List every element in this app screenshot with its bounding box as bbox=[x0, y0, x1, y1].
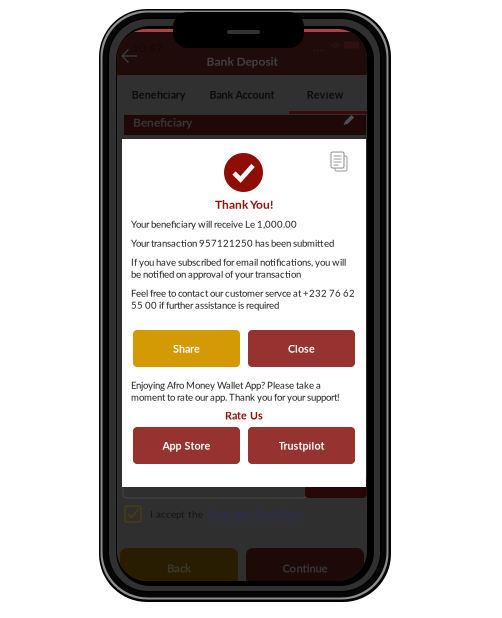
staticText: Rate Us bbox=[225, 409, 263, 422]
staticText: Review bbox=[307, 88, 344, 101]
button[interactable]: Trustpilot bbox=[248, 427, 355, 464]
button[interactable]: Close bbox=[248, 330, 355, 367]
staticText: 55 00 if further assistance is required bbox=[131, 299, 279, 311]
staticText: be notified on approval of your transact… bbox=[131, 268, 301, 280]
staticText: Your transaction 957121250 has been subm… bbox=[131, 237, 334, 249]
button[interactable]: Beneficiary bbox=[117, 75, 200, 114]
staticText: Back bbox=[167, 561, 191, 575]
staticText: Enjoying Afro Money Wallet App? Please t… bbox=[131, 379, 321, 391]
button[interactable]: Edit beneficiary bbox=[343, 114, 355, 126]
staticText: Terms and Conditions bbox=[206, 508, 303, 520]
button[interactable]: Share bbox=[133, 330, 240, 367]
button[interactable]: View receipt bbox=[330, 151, 349, 173]
staticText: Close bbox=[288, 342, 315, 355]
button[interactable]: Back bbox=[120, 548, 238, 588]
staticText: moment to rate our app. Thank you for yo… bbox=[131, 391, 340, 403]
button[interactable]: I accept the bbox=[117, 499, 367, 529]
staticText: I accept the bbox=[150, 508, 206, 520]
staticText: Share bbox=[173, 342, 200, 355]
button[interactable]: Bank Account bbox=[200, 75, 284, 114]
staticText: Feel free to contact our customer servce… bbox=[131, 287, 355, 299]
staticText: Bank Account bbox=[209, 88, 274, 101]
staticText: Beneficiary bbox=[133, 115, 192, 129]
staticText: Thank You! bbox=[215, 197, 273, 211]
staticText: If you have subscribed for email notific… bbox=[131, 256, 346, 268]
staticText: Your beneficiary will receive Le 1,000.0… bbox=[131, 218, 297, 230]
staticText: Bank Deposit bbox=[206, 54, 277, 68]
staticText: App Store bbox=[162, 439, 210, 452]
staticText: Trustpilot bbox=[278, 439, 324, 452]
staticText: Beneficiary bbox=[132, 88, 186, 101]
button[interactable]: App Store bbox=[133, 427, 240, 464]
button[interactable]: Back bbox=[118, 48, 144, 70]
button[interactable]: Continue bbox=[246, 548, 364, 588]
staticText: 10:47 bbox=[132, 40, 163, 54]
button[interactable]: Review bbox=[284, 75, 367, 114]
staticText: Continue bbox=[282, 561, 327, 575]
